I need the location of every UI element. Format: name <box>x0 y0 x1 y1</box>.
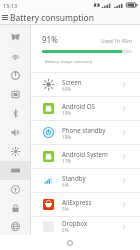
button[interactable]: Brightness <box>0 142 30 161</box>
staticText: Battery usage summary <box>45 59 93 65</box>
staticText: 15:13 <box>3 2 18 9</box>
staticText: Battery consumption <box>10 12 94 24</box>
button[interactable]: Screen lock <box>0 199 30 218</box>
button[interactable]: Android OS <box>31 97 140 120</box>
button[interactable]: Home <box>64 237 76 249</box>
staticText: 91 <box>131 2 138 9</box>
button[interactable]: Mobile data <box>0 161 30 180</box>
staticText: 19% <box>62 110 72 116</box>
staticText: 91% <box>42 34 58 45</box>
button[interactable]: Bluetooth <box>0 104 30 123</box>
button[interactable]: Dropbox <box>31 217 140 235</box>
button[interactable]: Android System <box>31 145 140 168</box>
staticText: Android System <box>62 150 108 158</box>
staticText: Android OS <box>62 102 95 110</box>
staticText: 40% <box>62 86 72 92</box>
staticText: 4% <box>62 182 69 188</box>
button[interactable]: NFC <box>0 28 30 47</box>
button[interactable]: AliExpress <box>31 193 140 216</box>
staticText: 3% <box>62 206 69 212</box>
staticText: 2% <box>62 227 69 233</box>
button[interactable]: Power saving <box>0 66 30 85</box>
button[interactable]: Phone standby <box>31 121 140 144</box>
button[interactable]: Wi-Fi <box>0 47 30 66</box>
staticText: Screen <box>62 78 82 86</box>
button[interactable]: Standby <box>31 169 140 192</box>
button[interactable]: Menu <box>0 10 10 25</box>
button[interactable]: Sound <box>0 123 30 142</box>
staticText: Dropbox <box>62 219 88 227</box>
button[interactable]: SIM cards <box>0 85 30 104</box>
staticText: Used 1h 49m <box>101 38 132 45</box>
staticText: Standby <box>62 174 86 182</box>
button[interactable]: Location <box>0 180 30 199</box>
button[interactable]: Language <box>0 218 30 235</box>
staticText: 11% <box>62 158 72 164</box>
staticText: AliExpress <box>62 198 92 206</box>
staticText: Phone standby <box>62 126 106 134</box>
staticText: 18% <box>62 134 72 140</box>
button[interactable]: Screen <box>31 73 140 96</box>
